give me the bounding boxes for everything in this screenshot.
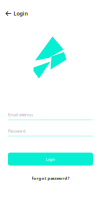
button[interactable]: Login [0,1,31,21]
staticText: Login [14,10,28,17]
staticText: Forgot password? [31,176,69,181]
staticText: Login [45,156,55,162]
staticText: Email address [8,112,33,117]
button[interactable]: Forgot password? [29,174,71,183]
staticText: Password [8,128,25,134]
button[interactable]: Login [8,153,93,166]
